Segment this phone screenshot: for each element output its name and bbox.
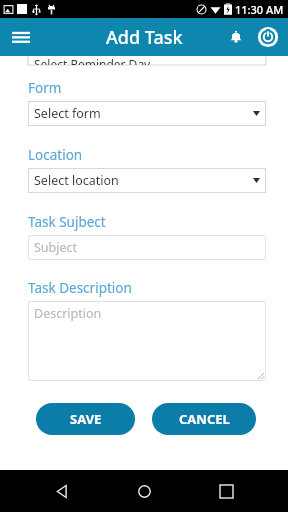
button[interactable]: Select form	[28, 101, 266, 126]
button[interactable]: CANCEL	[152, 403, 256, 435]
button[interactable]: Notifications	[221, 22, 251, 52]
staticText: 11:30 AM	[235, 2, 284, 17]
staticText: Select form	[34, 105, 101, 122]
staticText: Task Sujbect	[28, 213, 106, 231]
staticText: Select location	[34, 172, 119, 189]
staticText: Subject	[34, 239, 78, 256]
button[interactable]: Select Reminder Day	[28, 56, 266, 65]
staticText: Task Description	[28, 279, 132, 297]
button[interactable]: Home	[124, 471, 164, 511]
staticText: Description	[34, 305, 102, 322]
button[interactable]: Select location	[28, 168, 266, 193]
button[interactable]: Open navigation menu	[5, 21, 37, 53]
button[interactable]: Logout	[253, 22, 283, 52]
button[interactable]: Back	[42, 471, 82, 511]
button[interactable]: Subject	[28, 235, 266, 260]
staticText: Location	[28, 146, 83, 164]
button[interactable]: Description	[28, 301, 266, 381]
staticText: CANCEL	[179, 410, 230, 428]
staticText: Form	[28, 79, 62, 97]
staticText: Add Task	[106, 25, 183, 50]
button[interactable]: SAVE	[36, 403, 135, 435]
button[interactable]: Recent apps	[206, 471, 246, 511]
staticText: Select Reminder Day	[34, 56, 151, 65]
staticText: SAVE	[70, 410, 102, 428]
